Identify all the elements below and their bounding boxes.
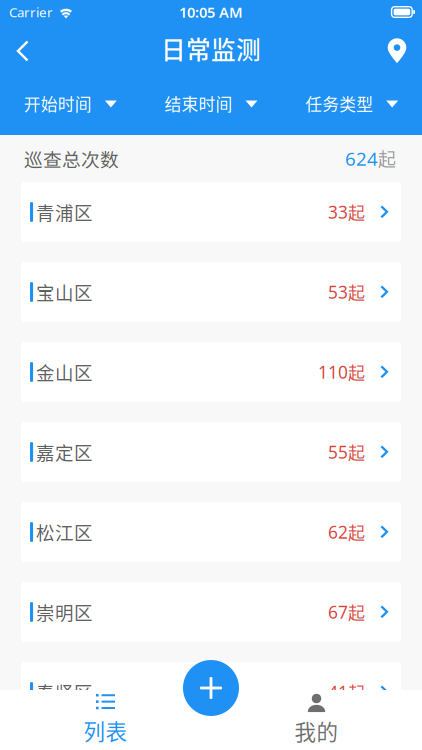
button[interactable]: 我的 (211, 690, 422, 750)
staticText: 110 (318, 360, 348, 383)
button[interactable]: 结束时间 (141, 78, 281, 135)
button[interactable]: 列表 (0, 690, 211, 750)
button[interactable]: 地图定位 (375, 24, 419, 78)
staticText: 列表 (83, 715, 127, 746)
button[interactable]: 崇明区 (21, 582, 401, 642)
button[interactable]: 嘉定区 (21, 422, 401, 482)
button[interactable]: 金山区 (21, 342, 401, 402)
button[interactable]: 松江区 (21, 502, 401, 562)
staticText: 起 (378, 145, 396, 172)
staticText: 起 (348, 360, 365, 384)
staticText: 33 (328, 200, 348, 223)
button[interactable]: 奉贤区 (21, 662, 401, 722)
staticText: 41 (328, 680, 348, 703)
staticText: 624 (345, 146, 378, 171)
staticText: 起 (348, 600, 365, 624)
staticText: 起 (348, 520, 365, 544)
staticText: 宝山区 (36, 279, 93, 305)
staticText: 起 (348, 440, 365, 464)
staticText: 奉贤区 (36, 679, 93, 705)
staticText: 金山区 (36, 359, 93, 385)
staticText: 日常监测 (161, 31, 261, 66)
button[interactable]: 宝山区 (21, 262, 401, 322)
staticText: 松江区 (36, 519, 93, 545)
staticText: Carrier (9, 3, 53, 21)
staticText: 起 (348, 200, 365, 224)
button[interactable]: 返回 (0, 24, 46, 78)
staticText: 嘉定区 (36, 439, 93, 465)
staticText: 10:05 AM (179, 2, 243, 22)
staticText: 67 (328, 600, 348, 623)
staticText: 任务类型 (305, 91, 373, 116)
button[interactable]: 青浦区 (21, 182, 401, 242)
staticText: 62 (328, 520, 348, 543)
button[interactable]: 开始时间 (0, 78, 141, 135)
staticText: 53 (328, 280, 348, 303)
button[interactable]: 新增 (183, 660, 239, 716)
button[interactable]: 任务类型 (281, 78, 422, 135)
staticText: 结束时间 (164, 91, 232, 116)
staticText: 我的 (294, 715, 338, 746)
staticText: 起 (348, 280, 365, 304)
staticText: 青浦区 (36, 199, 93, 225)
staticText: 开始时间 (24, 91, 92, 116)
staticText: 55 (328, 440, 348, 463)
staticText: 崇明区 (36, 599, 93, 625)
staticText: 起 (348, 680, 365, 704)
staticText: 巡查总次数 (24, 145, 119, 172)
